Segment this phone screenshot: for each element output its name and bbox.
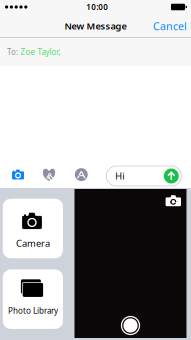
staticText: Hi: [115, 170, 124, 182]
button[interactable]: Send: [164, 168, 179, 183]
button[interactable]: Camera: [7, 163, 29, 185]
button[interactable]: Switch camera: [166, 195, 181, 206]
button[interactable]: App Store: [70, 164, 92, 186]
staticText: New Message: [64, 20, 126, 32]
staticText: To:: [7, 47, 18, 57]
staticText: Photo Library: [8, 305, 58, 316]
staticText: Zoe Taylor,: [20, 47, 60, 57]
button[interactable]: Photo Library: [3, 269, 63, 329]
button[interactable]: Digital Touch: [38, 164, 60, 186]
button[interactable]: Cancel: [149, 14, 191, 38]
staticText: 10:00: [86, 2, 108, 12]
staticText: Cancel: [153, 19, 187, 33]
staticText: Camera: [16, 237, 50, 249]
button[interactable]: Camera: [3, 199, 63, 258]
